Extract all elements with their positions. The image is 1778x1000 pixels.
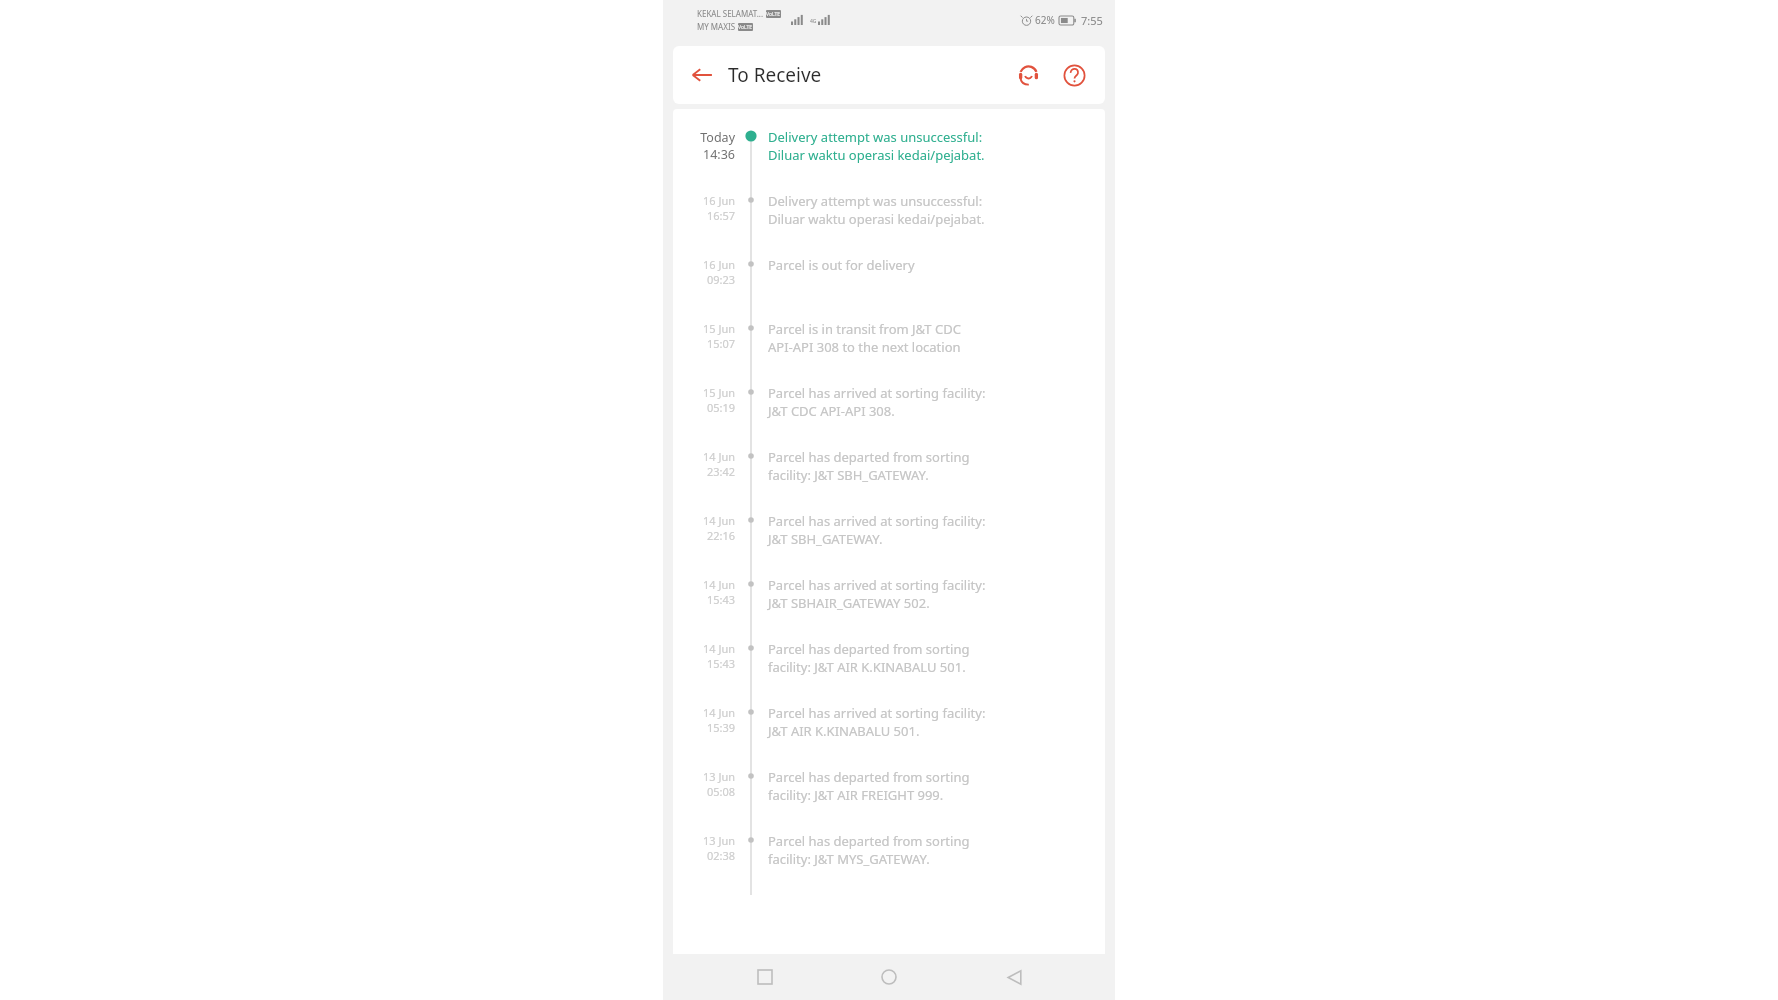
staticText: J&T CDC API-API 308. — [768, 402, 895, 420]
button[interactable]: 14 Jun — [673, 703, 1105, 767]
staticText: 16 Jun — [702, 257, 735, 272]
button[interactable]: 14 Jun — [673, 511, 1105, 575]
staticText: 14 Jun — [702, 577, 735, 592]
button[interactable]: Customer service — [1009, 56, 1047, 94]
staticText: 15:39 — [706, 720, 735, 735]
staticText: 13 Jun — [702, 769, 735, 784]
staticText: 15 Jun — [702, 385, 735, 400]
staticText: 09:23 — [706, 272, 735, 287]
button[interactable]: Home — [866, 954, 912, 1000]
staticText: 05:08 — [706, 784, 735, 799]
staticText: Parcel is in transit from J&T CDC — [768, 320, 961, 338]
button[interactable]: 13 Jun — [673, 831, 1105, 895]
staticText: To Receive — [728, 62, 822, 88]
button[interactable]: 15 Jun — [673, 319, 1105, 383]
staticText: 05:19 — [706, 400, 735, 415]
button[interactable]: Recent apps — [742, 954, 788, 1000]
staticText: Diluar waktu operasi kedai/pejabat. — [768, 210, 985, 228]
button[interactable]: Back — [685, 58, 719, 92]
staticText: facility: J&T AIR FREIGHT 999. — [768, 786, 944, 804]
staticText: Parcel has departed from sorting — [768, 448, 970, 466]
staticText: Parcel is out for delivery — [768, 256, 915, 274]
staticText: 15:43 — [706, 656, 735, 671]
staticText: 62% — [1035, 13, 1055, 27]
staticText: 15:07 — [706, 336, 735, 351]
staticText: facility: J&T SBH_GATEWAY. — [768, 466, 929, 484]
staticText: Delivery attempt was unsuccessful: — [768, 192, 983, 210]
button[interactable]: Back — [991, 954, 1037, 1000]
staticText: 02:38 — [706, 848, 735, 863]
staticText: J&T SBHAIR_GATEWAY 502. — [768, 594, 930, 612]
staticText: 23:42 — [706, 464, 735, 479]
button[interactable]: 14 Jun — [673, 447, 1105, 511]
staticText: 14 Jun — [702, 705, 735, 720]
button[interactable]: 13 Jun — [673, 767, 1105, 831]
staticText: Parcel has departed from sorting — [768, 832, 970, 850]
staticText: 15:43 — [706, 592, 735, 607]
staticText: 7:55 — [1081, 13, 1103, 28]
staticText: KEKAL SELAMAT... — [697, 8, 764, 19]
staticText: Parcel has departed from sorting — [768, 640, 970, 658]
staticText: 16:57 — [706, 208, 735, 223]
button[interactable]: Help — [1055, 56, 1093, 94]
staticText: facility: J&T AIR K.KINABALU 501. — [768, 658, 966, 676]
staticText: 15 Jun — [702, 321, 735, 336]
staticText: 4G — [810, 18, 817, 25]
staticText: 14 Jun — [702, 513, 735, 528]
button[interactable]: 14 Jun — [673, 575, 1105, 639]
staticText: Parcel has departed from sorting — [768, 768, 970, 786]
button[interactable]: Today — [673, 127, 1105, 191]
staticText: VoLTE — [738, 24, 753, 31]
staticText: J&T SBH_GATEWAY. — [768, 530, 883, 548]
staticText: 14 Jun — [702, 449, 735, 464]
staticText: 16 Jun — [702, 193, 735, 208]
staticText: MY MAXIS — [697, 21, 736, 32]
staticText: API-API 308 to the next location — [768, 338, 961, 356]
button[interactable]: 16 Jun — [673, 191, 1105, 255]
button[interactable]: 16 Jun — [673, 255, 1105, 319]
staticText: J&T AIR K.KINABALU 501. — [768, 722, 920, 740]
button[interactable]: 15 Jun — [673, 383, 1105, 447]
staticText: Diluar waktu operasi kedai/pejabat. — [768, 146, 985, 164]
staticText: Parcel has arrived at sorting facility: — [768, 384, 986, 402]
staticText: Parcel has arrived at sorting facility: — [768, 576, 986, 594]
staticText: VoLTE — [766, 11, 781, 18]
staticText: 14 Jun — [702, 641, 735, 656]
button[interactable]: 14 Jun — [673, 639, 1105, 703]
staticText: Delivery attempt was unsuccessful: — [768, 128, 983, 146]
staticText: Parcel has arrived at sorting facility: — [768, 704, 986, 722]
staticText: facility: J&T MYS_GATEWAY. — [768, 850, 930, 868]
staticText: 14:36 — [703, 146, 735, 163]
staticText: Today — [700, 129, 735, 146]
staticText: 22:16 — [706, 528, 735, 543]
staticText: Parcel has arrived at sorting facility: — [768, 512, 986, 530]
staticText: 13 Jun — [702, 833, 735, 848]
